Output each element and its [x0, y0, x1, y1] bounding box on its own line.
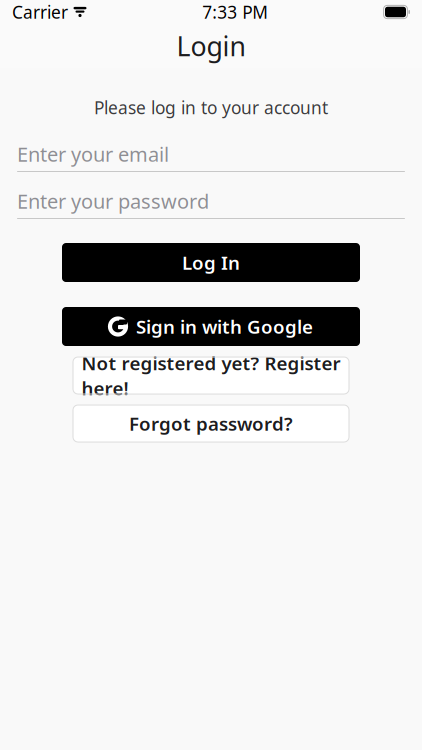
- staticText: Log In: [182, 250, 240, 275]
- staticText: Not registered yet? Register here!: [81, 351, 340, 400]
- staticText: Enter your password: [17, 188, 209, 214]
- staticText: Enter your email: [17, 141, 169, 167]
- staticText: 7:33 PM: [202, 0, 268, 23]
- staticText: Carrier: [12, 0, 68, 23]
- staticText: Sign in with Google: [136, 314, 313, 339]
- button[interactable]: Not registered yet? Register here!: [73, 357, 349, 394]
- button[interactable]: Sign in with Google: [62, 307, 360, 346]
- button[interactable]: Log In: [62, 243, 360, 282]
- staticText: Forgot password?: [129, 411, 293, 436]
- button[interactable]: Forgot password?: [73, 405, 349, 442]
- staticText: Please log in to your account: [94, 96, 328, 119]
- staticText: Login: [176, 28, 245, 64]
